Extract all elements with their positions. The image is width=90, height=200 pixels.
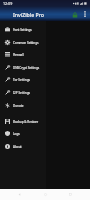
- button[interactable]: Font Settings: [0, 23, 46, 36]
- button[interactable]: Recent apps: [65, 189, 76, 200]
- staticText: Font Settings: [13, 28, 32, 32]
- staticText: InviZible Pro: [13, 11, 44, 18]
- button[interactable]: DNSCrypt Settings: [0, 61, 46, 74]
- button[interactable]: Donate: [0, 99, 46, 112]
- staticText: Logs: [13, 132, 20, 136]
- staticText: Backup & Restore: [13, 120, 39, 124]
- button[interactable]: Back: [14, 189, 25, 200]
- staticText: Firewall: [13, 53, 24, 57]
- staticText: Common Settings: [13, 41, 39, 45]
- button[interactable]: I2P Settings: [0, 86, 46, 99]
- staticText: DNSCrypt Settings: [13, 66, 40, 70]
- button[interactable]: Logs: [0, 127, 46, 140]
- button[interactable]: Firewall: [0, 48, 46, 61]
- staticText: Tor Settings: [13, 78, 30, 82]
- staticText: I2P Settings: [13, 91, 31, 95]
- button[interactable]: Protection status: [69, 9, 80, 20]
- button[interactable]: Tor Settings: [0, 73, 46, 86]
- button[interactable]: Backup & Restore: [0, 115, 46, 128]
- button[interactable]: About: [0, 140, 46, 153]
- staticText: About: [13, 145, 22, 149]
- staticText: 12:09: [3, 1, 13, 6]
- button[interactable]: Common Settings: [0, 36, 46, 49]
- staticText: Donate: [13, 104, 24, 108]
- button[interactable]: More options: [80, 9, 90, 19]
